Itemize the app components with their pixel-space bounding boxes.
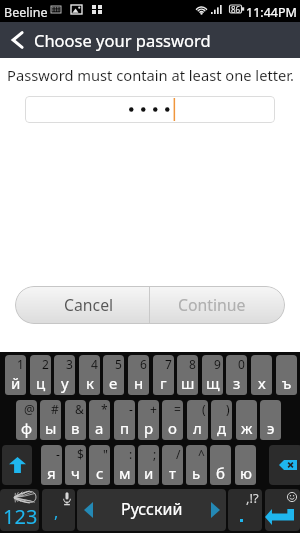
button[interactable]: (: [187, 400, 208, 440]
button[interactable]: Previous language: [79, 501, 97, 519]
button[interactable]: Back: [0, 22, 34, 58]
button[interactable]: ): [211, 400, 232, 440]
button[interactable]: Backspace: [269, 445, 300, 485]
staticText: Beeline: [4, 4, 48, 21]
staticText: к: [86, 373, 94, 393]
staticText: б: [216, 463, 225, 483]
staticText: ^: [198, 446, 205, 462]
button[interactable]: Shift: [2, 445, 32, 485]
staticText: 7: [165, 356, 172, 372]
staticText: ): [226, 401, 230, 417]
staticText: $: [77, 446, 84, 462]
staticText: 3: [66, 356, 73, 372]
staticText: ;: [153, 446, 157, 462]
button[interactable]: +: [138, 400, 159, 440]
button[interactable]: ю: [235, 445, 256, 485]
button[interactable]: 3: [54, 355, 75, 395]
button[interactable]: б: [210, 445, 231, 485]
staticText: Password must contain at least one lette…: [7, 65, 294, 85]
staticText: Choose your password: [34, 29, 211, 51]
staticText: я: [47, 463, 56, 483]
staticText: Continue: [178, 294, 246, 316]
staticText: 123: [3, 503, 38, 530]
button[interactable]: Enter: [265, 489, 300, 531]
staticText: п: [120, 418, 130, 438]
button[interactable]: 2: [30, 355, 51, 395]
staticText: з: [233, 373, 241, 393]
button[interactable]: =: [162, 400, 183, 440]
staticText: ю: [240, 463, 252, 483]
button[interactable]: ж: [236, 400, 257, 440]
staticText: ш: [181, 373, 195, 393]
staticText: @: [24, 401, 35, 417]
staticText: ,!?: [246, 489, 259, 507]
button[interactable]: 8: [177, 355, 198, 395]
staticText: 2: [42, 356, 49, 372]
staticText: 86: [231, 4, 241, 14]
staticText: :: [129, 446, 133, 462]
button[interactable]: #: [40, 400, 61, 440]
staticText: &: [75, 401, 84, 417]
button[interactable]: 6: [128, 355, 149, 395]
button[interactable]: :: [114, 445, 135, 485]
button[interactable]: ^: [186, 445, 207, 485]
staticText: э: [267, 418, 275, 438]
staticText: е: [109, 373, 118, 393]
staticText: +: [150, 401, 157, 417]
staticText: ъ: [282, 373, 292, 393]
staticText: 0: [238, 356, 245, 372]
button[interactable]: э: [260, 400, 281, 440]
staticText: 1: [17, 356, 24, 372]
staticText: 11:44PM: [246, 4, 297, 21]
button[interactable]: -: [114, 400, 135, 440]
staticText: т: [169, 463, 176, 483]
staticText: ": [103, 446, 108, 462]
staticText: 5: [115, 356, 122, 372]
button[interactable]: 4: [79, 355, 100, 395]
button[interactable]: /: [162, 445, 183, 485]
staticText: и: [144, 463, 154, 483]
button[interactable]: ;: [138, 445, 159, 485]
staticText: #: [51, 401, 59, 417]
button[interactable]: Cancel: [15, 286, 149, 324]
staticText: р: [144, 418, 154, 438]
button[interactable]: 0: [226, 355, 247, 395]
button[interactable]: @: [16, 400, 37, 440]
button[interactable]: ъ: [276, 355, 297, 395]
staticText: ц: [36, 373, 46, 393]
staticText: ,: [54, 501, 59, 523]
staticText: н: [134, 373, 144, 393]
staticText: ы: [45, 418, 57, 438]
staticText: -: [129, 401, 133, 417]
staticText: м: [119, 463, 131, 483]
button[interactable]: -: [41, 445, 62, 485]
button[interactable]: Next language: [206, 501, 224, 519]
staticText: 4: [91, 356, 98, 372]
button[interactable]: Punctuation: [228, 489, 262, 531]
button[interactable]: *: [89, 400, 110, 440]
staticText: х: [258, 373, 266, 393]
button[interactable]: 9: [202, 355, 223, 395]
staticText: а: [95, 418, 104, 438]
staticText: ф: [21, 418, 33, 438]
button[interactable]: Numbers and symbols: [0, 489, 39, 531]
button[interactable]: [25, 96, 275, 123]
staticText: (: [202, 401, 206, 417]
button[interactable]: 1: [5, 355, 26, 395]
button[interactable]: х: [251, 355, 272, 395]
staticText: 6: [140, 356, 147, 372]
staticText: щ: [206, 373, 220, 393]
button[interactable]: 7: [153, 355, 174, 395]
staticText: ч: [71, 463, 80, 483]
button[interactable]: &: [65, 400, 86, 440]
staticText: ж: [241, 418, 253, 438]
button[interactable]: Voice input: [42, 489, 75, 531]
staticText: с: [96, 463, 104, 483]
button[interactable]: ": [89, 445, 110, 485]
button[interactable]: Русский: [77, 489, 226, 531]
button[interactable]: Continue: [150, 286, 285, 324]
staticText: г: [160, 373, 167, 393]
button[interactable]: 5: [103, 355, 124, 395]
staticText: =: [174, 401, 181, 417]
button[interactable]: $: [65, 445, 86, 485]
